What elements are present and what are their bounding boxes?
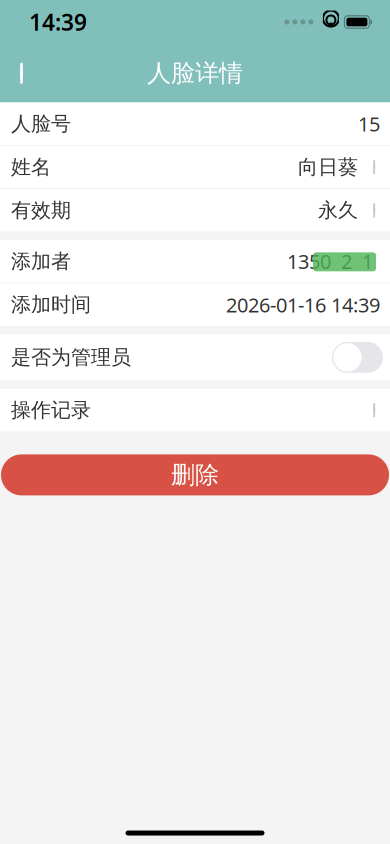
staticText: 1350 2 1 — [287, 248, 373, 275]
staticText: 14:39 — [29, 7, 87, 37]
staticText: 添加时间 — [11, 292, 91, 317]
staticText: 删除 — [171, 460, 219, 490]
staticText: 添加者 — [11, 249, 71, 274]
button[interactable]: 姓名 — [0, 146, 390, 188]
button[interactable]: 删除 — [1, 454, 389, 495]
button[interactable]: 有效期 — [0, 189, 390, 232]
staticText: 15 — [358, 110, 380, 137]
staticText: 人脸号 — [11, 111, 71, 136]
staticText: 永久 — [318, 198, 358, 223]
button[interactable]: 是否为管理员 — [332, 342, 383, 373]
staticText: 有效期 — [11, 198, 71, 223]
staticText: 姓名 — [11, 155, 51, 179]
staticText: 向日葵 — [298, 155, 358, 179]
button[interactable]: 返回 — [0, 51, 48, 95]
staticText: 人脸详情 — [147, 58, 243, 88]
staticText: 操作记录 — [11, 398, 91, 422]
staticText: 是否为管理员 — [11, 345, 131, 370]
staticText: 2026-01-16 14:39 — [226, 291, 380, 318]
button[interactable]: 操作记录 — [0, 389, 390, 431]
